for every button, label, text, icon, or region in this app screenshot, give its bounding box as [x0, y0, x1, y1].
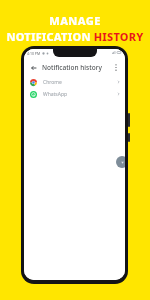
staticText: Chrome	[43, 79, 62, 86]
staticText: 4:10 PM	[27, 51, 41, 56]
staticText: NOTIFICATION HISTORY	[6, 29, 144, 44]
button[interactable]: More options	[110, 62, 121, 73]
staticText: MANAGE	[49, 13, 101, 28]
staticText: Notification history	[42, 63, 102, 72]
button[interactable]: Scroll down	[116, 156, 125, 168]
button[interactable]: Chrome	[24, 76, 125, 88]
staticText: WhatsApp	[43, 91, 68, 98]
button[interactable]: Back	[28, 62, 39, 73]
button[interactable]: WhatsApp	[24, 88, 125, 100]
